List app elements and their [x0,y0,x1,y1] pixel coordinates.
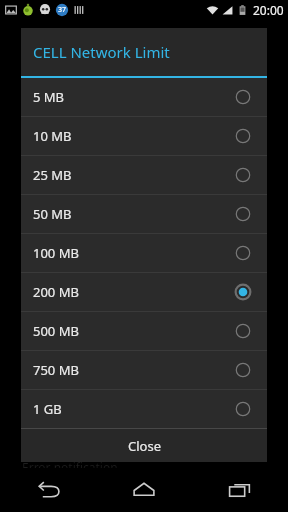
staticText: 37 [58,5,67,15]
staticText: 25 MB [33,166,235,184]
button[interactable]: 200 MB [21,273,267,311]
button[interactable]: 5 MB [21,78,267,116]
staticText: 50 MB [33,205,235,223]
staticText: 10 MB [33,127,235,145]
button[interactable]: Close [21,429,267,462]
staticText: Error notification [22,459,118,475]
button[interactable]: 100 MB [21,234,267,272]
button[interactable]: 25 MB [21,156,267,194]
staticText: 5 MB [33,88,235,106]
staticText: 20:00 [253,2,284,18]
button[interactable]: Back [0,468,96,512]
button[interactable]: Home [96,468,192,512]
staticText: Close [128,437,161,455]
staticText: 1 GB [33,400,235,418]
button[interactable]: 750 MB [21,351,267,389]
staticText: CELL Network Limit [33,42,170,62]
button[interactable]: 50 MB [21,195,267,233]
button[interactable]: 500 MB [21,312,267,350]
button[interactable]: 1 GB [21,390,267,428]
staticText: 100 MB [33,244,235,262]
staticText: 500 MB [33,322,235,340]
staticText: 750 MB [33,361,235,379]
staticText: 200 MB [33,283,235,301]
button[interactable]: Recent apps [192,468,288,512]
button[interactable]: 10 MB [21,117,267,155]
